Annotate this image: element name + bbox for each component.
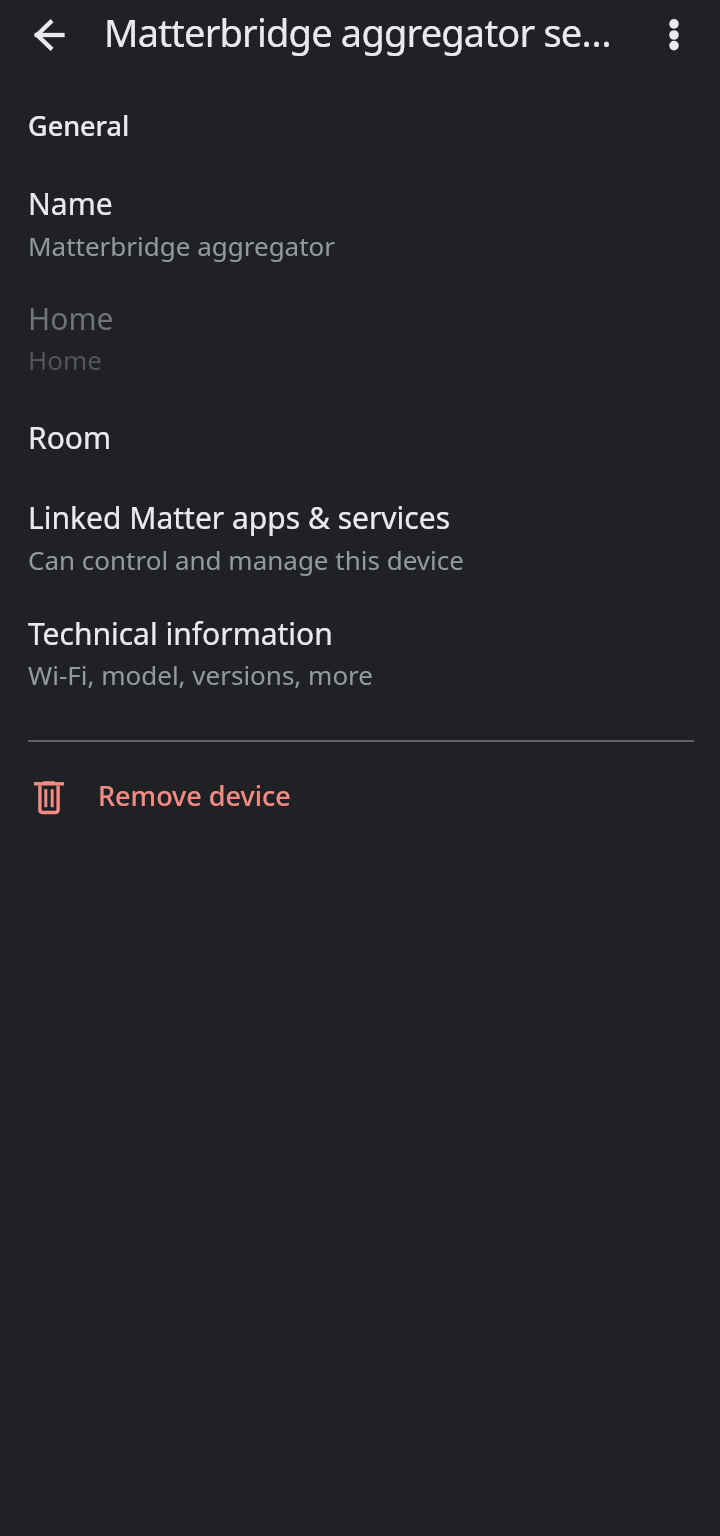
button[interactable]: Back: [20, 5, 80, 65]
staticText: General: [28, 107, 130, 144]
staticText: Room: [28, 417, 112, 458]
staticText: Can control and manage this device: [28, 542, 464, 577]
staticText: Remove device: [98, 777, 291, 814]
button[interactable]: Home: [0, 276, 720, 388]
button[interactable]: More options: [644, 5, 704, 65]
staticText: Matterbridge aggregator: [28, 228, 336, 263]
staticText: Matterbridge aggregator se…: [104, 6, 611, 58]
button[interactable]: Remove device: [0, 752, 720, 844]
staticText: Technical information: [28, 613, 333, 654]
staticText: Wi-Fi, model, versions, more: [28, 657, 373, 692]
button[interactable]: Technical information: [0, 590, 720, 702]
staticText: Home: [28, 342, 102, 377]
staticText: Name: [28, 183, 113, 224]
button[interactable]: Linked Matter apps & services: [0, 474, 720, 586]
button[interactable]: Room: [0, 392, 720, 470]
staticText: Home: [28, 298, 114, 339]
button[interactable]: Name: [0, 160, 720, 272]
staticText: Linked Matter apps & services: [28, 497, 451, 538]
